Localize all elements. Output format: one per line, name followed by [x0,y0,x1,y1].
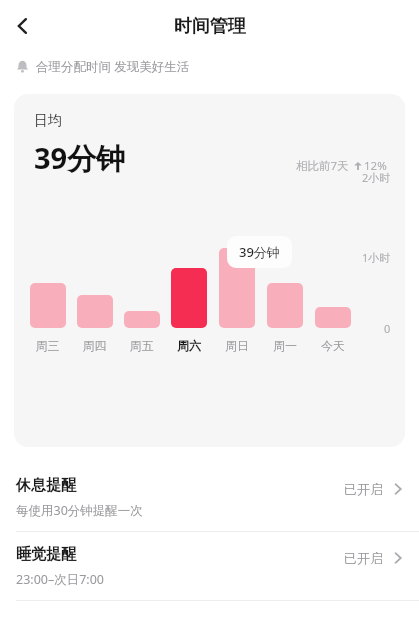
staticText: 今天 [309,338,357,353]
staticText: 周三 [24,338,71,353]
staticText: 时间管理 [174,15,246,38]
button[interactable]: 日均 [14,94,405,447]
staticText: 周四 [71,338,118,353]
staticText: 日均 [34,112,62,130]
staticText: 周六 [165,338,213,353]
staticText: 睡觉提醒 [16,545,76,564]
staticText: 12% [364,158,387,174]
staticText: 1小时 [362,250,391,265]
button[interactable]: 睡觉提醒 [0,532,419,600]
staticText: 每使用30分钟提醒一次 [16,502,143,519]
staticText: 39分钟 [34,138,126,178]
staticText: 23:00–次日7:00 [16,571,105,588]
staticText: 周日 [213,338,261,353]
staticText: 休息提醒 [16,476,76,495]
staticText: 相比前7天 [296,158,349,174]
staticText: 周一 [261,338,309,353]
staticText: 合理分配时间 发现美好生活 [36,58,190,75]
staticText: 周五 [118,338,165,353]
staticText: 0 [384,321,391,336]
staticText: 已开启 [344,481,383,497]
button[interactable]: Back [6,9,40,43]
staticText: 39分钟 [239,243,280,261]
button[interactable]: 休息提醒 [0,463,419,531]
staticText: 已开启 [344,550,383,566]
staticText: 2小时 [362,170,391,185]
